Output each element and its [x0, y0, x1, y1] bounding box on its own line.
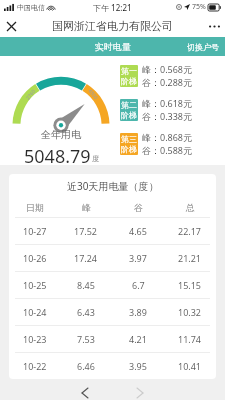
- staticText: 10-23: [23, 333, 47, 345]
- staticText: 下午 12:21: [93, 2, 132, 13]
- staticText: 3.89: [129, 306, 147, 318]
- staticText: 谷：0.338元: [142, 110, 193, 122]
- staticText: 峰：0.568元: [142, 63, 193, 75]
- staticText: 4800: [86, 88, 99, 101]
- staticText: 6.43: [77, 306, 95, 318]
- staticText: 第二: [121, 100, 137, 110]
- staticText: 总: [186, 202, 195, 213]
- staticText: 阶梯: [121, 110, 137, 120]
- staticText: 17.52: [74, 225, 98, 237]
- staticText: 谷：0.288元: [142, 76, 193, 88]
- staticText: 度: [92, 154, 99, 163]
- staticText: 10.32: [178, 306, 202, 318]
- staticText: 6.7: [132, 279, 145, 291]
- staticText: 谷: [134, 202, 143, 213]
- staticText: 近30天用电量（度）: [67, 179, 159, 193]
- staticText: 峰：0.868元: [142, 131, 193, 143]
- button[interactable]: 10-23: [9, 326, 216, 352]
- staticText: 10-26: [23, 252, 47, 264]
- staticText: 7.53: [77, 333, 95, 345]
- button[interactable]: 实时电量: [89, 40, 137, 53]
- staticText: 阶梯: [121, 76, 137, 86]
- staticText: 3.95: [129, 360, 147, 372]
- staticText: 21.21: [178, 252, 202, 264]
- staticText: 10-22: [23, 360, 47, 372]
- staticText: 峰：0.618元: [142, 97, 193, 109]
- staticText: 10.41: [178, 360, 202, 372]
- staticText: 3.97: [129, 252, 147, 264]
- staticText: 22.17: [178, 225, 202, 237]
- button[interactable]: More options: [203, 15, 225, 37]
- staticText: 谷：0.588元: [142, 144, 193, 156]
- staticText: 峰: [82, 202, 91, 213]
- staticText: 17.24: [74, 252, 98, 264]
- button[interactable]: 10-27: [9, 218, 216, 244]
- staticText: 阶梯: [121, 144, 137, 154]
- staticText: 75%: [192, 2, 206, 12]
- staticText: 中国电信: [17, 3, 45, 12]
- button[interactable]: 10-26: [9, 245, 216, 271]
- staticText: 10-27: [23, 225, 47, 237]
- button[interactable]: Close: [0, 15, 22, 37]
- staticText: 全年用电: [41, 128, 81, 141]
- staticText: 日期: [26, 202, 44, 213]
- staticText: 4.65: [129, 225, 147, 237]
- staticText: 实时电量: [95, 41, 131, 52]
- staticText: 5048.79: [24, 144, 91, 165]
- button[interactable]: 10-24: [9, 299, 216, 325]
- staticText: 15.15: [178, 279, 202, 291]
- staticText: 8.45: [77, 279, 95, 291]
- staticText: 国网浙江省电力有限公司: [52, 19, 173, 33]
- button[interactable]: Previous page: [71, 385, 99, 400]
- staticText: 10-25: [23, 279, 47, 291]
- staticText: 2760: [24, 88, 37, 101]
- button[interactable]: Next page: [126, 385, 154, 400]
- button[interactable]: 10-25: [9, 272, 216, 298]
- staticText: 10-24: [23, 306, 47, 318]
- staticText: 切换户号: [187, 42, 219, 52]
- staticText: 第一: [121, 66, 137, 76]
- button[interactable]: 10-22: [9, 353, 216, 379]
- staticText: 6.46: [77, 360, 95, 372]
- staticText: 4.21: [129, 333, 147, 345]
- staticText: 11.74: [178, 333, 202, 345]
- button[interactable]: 切换户号: [181, 40, 225, 54]
- staticText: 第三: [121, 134, 137, 144]
